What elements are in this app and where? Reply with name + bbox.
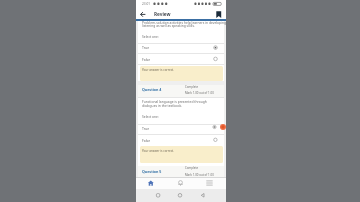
button[interactable] [195, 190, 211, 201]
staticText: Review [154, 11, 171, 17]
button[interactable] [200, 178, 220, 189]
staticText: Functional language is presented through [142, 99, 207, 103]
staticText: Your answer is correct. [142, 149, 174, 153]
button[interactable] [171, 178, 191, 189]
staticText: Mark 1.00 out of 1.00 [185, 173, 214, 177]
staticText: dialogues in the textbook. [142, 103, 183, 107]
staticText: False [142, 57, 151, 62]
staticText: True [142, 45, 150, 50]
staticText: Select one: [142, 34, 159, 38]
staticText: 23:01 [142, 2, 151, 6]
staticText: Mark 1.00 out of 1.00 [185, 91, 214, 95]
button[interactable] [138, 44, 224, 53]
staticText: Question 4 [142, 87, 162, 92]
button[interactable] [138, 54, 224, 64]
staticText: True [142, 126, 150, 131]
button[interactable] [138, 135, 224, 145]
staticText: Complete [185, 85, 199, 89]
staticText: Your answer is correct. [142, 68, 174, 72]
button[interactable] [215, 10, 223, 19]
button[interactable] [138, 125, 224, 135]
staticText: listening as well as speaking skills. [142, 23, 195, 27]
staticText: Complete [185, 166, 199, 170]
button[interactable] [138, 9, 148, 19]
button[interactable] [141, 178, 161, 189]
staticText: Question 5 [142, 169, 162, 174]
staticText: False [142, 138, 151, 143]
staticText: Problem-solution activities help learner… [142, 20, 227, 24]
staticText: Select one: [142, 114, 159, 118]
button[interactable] [150, 190, 166, 201]
button[interactable] [172, 190, 188, 201]
